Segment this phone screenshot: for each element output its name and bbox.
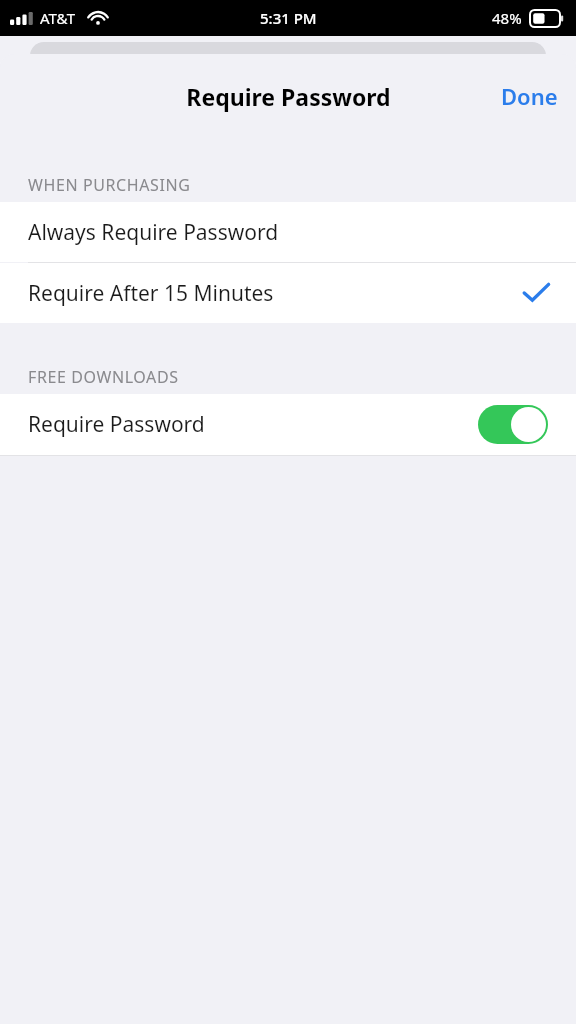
- staticText: Require Password: [28, 410, 478, 439]
- button[interactable]: Require Password: [0, 394, 576, 455]
- staticText: FREE DOWNLOADS: [28, 366, 179, 388]
- button[interactable]: Require After 15 Minutes: [0, 263, 576, 323]
- staticText: Done: [501, 81, 558, 111]
- staticText: WHEN PURCHASING: [28, 174, 191, 196]
- staticText: AT&T: [40, 8, 75, 28]
- button[interactable]: Always Require Password: [0, 202, 576, 262]
- staticText: Require Password: [186, 81, 391, 112]
- staticText: 5:31 PM: [260, 8, 317, 28]
- staticText: Always Require Password: [28, 218, 576, 247]
- staticText: Require After 15 Minutes: [28, 279, 522, 308]
- staticText: 48%: [492, 8, 522, 28]
- button[interactable]: Require Password toggle, on: [478, 405, 548, 444]
- button[interactable]: Done: [483, 71, 576, 121]
